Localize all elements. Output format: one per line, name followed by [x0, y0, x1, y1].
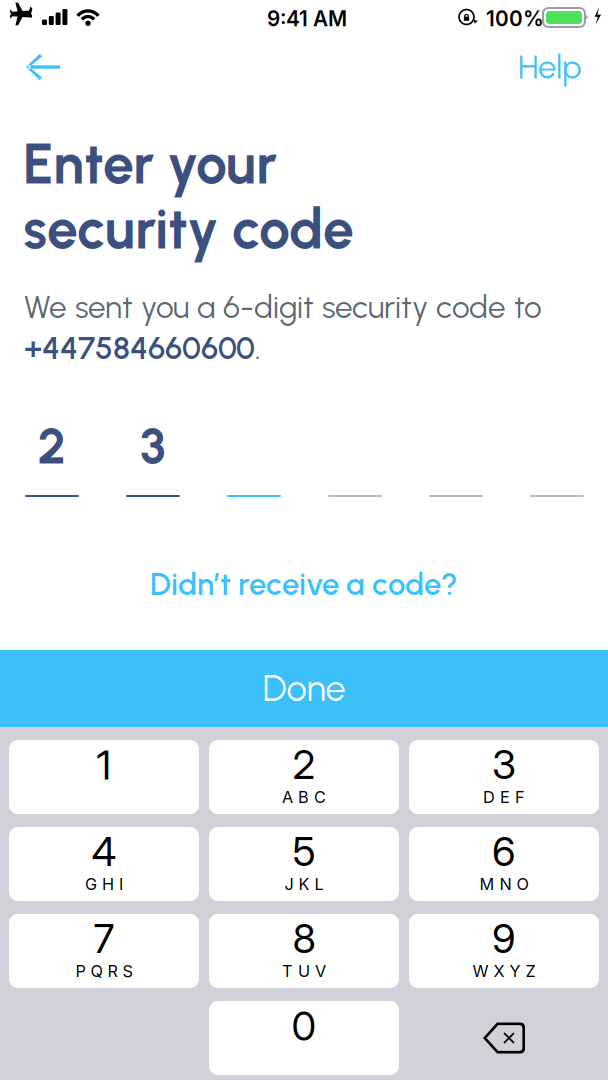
staticText: 100%	[486, 6, 544, 31]
button[interactable]: 0	[209, 1001, 399, 1075]
staticText: M N O	[479, 874, 528, 894]
button[interactable]: Done	[0, 650, 608, 727]
staticText: Help	[518, 47, 582, 87]
button[interactable]: 2	[209, 740, 399, 814]
staticText: 9	[492, 914, 516, 963]
staticText: We sent you a 6-digit security code to	[24, 288, 542, 326]
staticText: 8	[292, 914, 315, 963]
button[interactable]: 7	[9, 914, 199, 988]
staticText: +447584660600	[24, 329, 255, 367]
staticText: .	[255, 329, 261, 367]
staticText: 0	[291, 1002, 316, 1050]
staticText: W X Y Z	[472, 961, 535, 981]
staticText: P Q R S	[75, 961, 132, 981]
staticText: J K L	[284, 874, 323, 894]
staticText: Done	[262, 667, 345, 710]
staticText: 5	[292, 827, 315, 876]
staticText: 7	[93, 914, 114, 963]
button[interactable]: 6	[409, 827, 599, 901]
staticText: 3	[492, 740, 516, 789]
button[interactable]: Delete	[409, 1001, 599, 1075]
button[interactable]: Help	[504, 43, 594, 93]
staticText: D E F	[483, 787, 525, 807]
staticText: Didn’t receive a code?	[150, 565, 458, 603]
staticText: 3	[140, 416, 166, 476]
button[interactable]: 3	[409, 740, 599, 814]
button[interactable]: Back	[10, 41, 74, 93]
staticText: 9:41 AM	[267, 6, 347, 31]
button[interactable]: 5	[209, 827, 399, 901]
staticText: 2	[292, 740, 315, 789]
staticText: 6	[492, 827, 516, 876]
staticText: 2	[37, 416, 66, 476]
button[interactable]: 4	[9, 827, 199, 901]
button[interactable]: Didn’t receive a code?	[104, 559, 504, 609]
staticText: 4	[91, 827, 116, 876]
button[interactable]: 9	[409, 914, 599, 988]
staticText: Enter your	[23, 131, 277, 197]
staticText: T U V	[282, 961, 326, 981]
button[interactable]: 1	[9, 740, 199, 814]
staticText: 1	[96, 741, 111, 789]
staticText: G H I	[85, 874, 123, 894]
staticText: A B C	[282, 787, 326, 807]
button[interactable]: 8	[209, 914, 399, 988]
staticText: security code	[23, 196, 354, 262]
